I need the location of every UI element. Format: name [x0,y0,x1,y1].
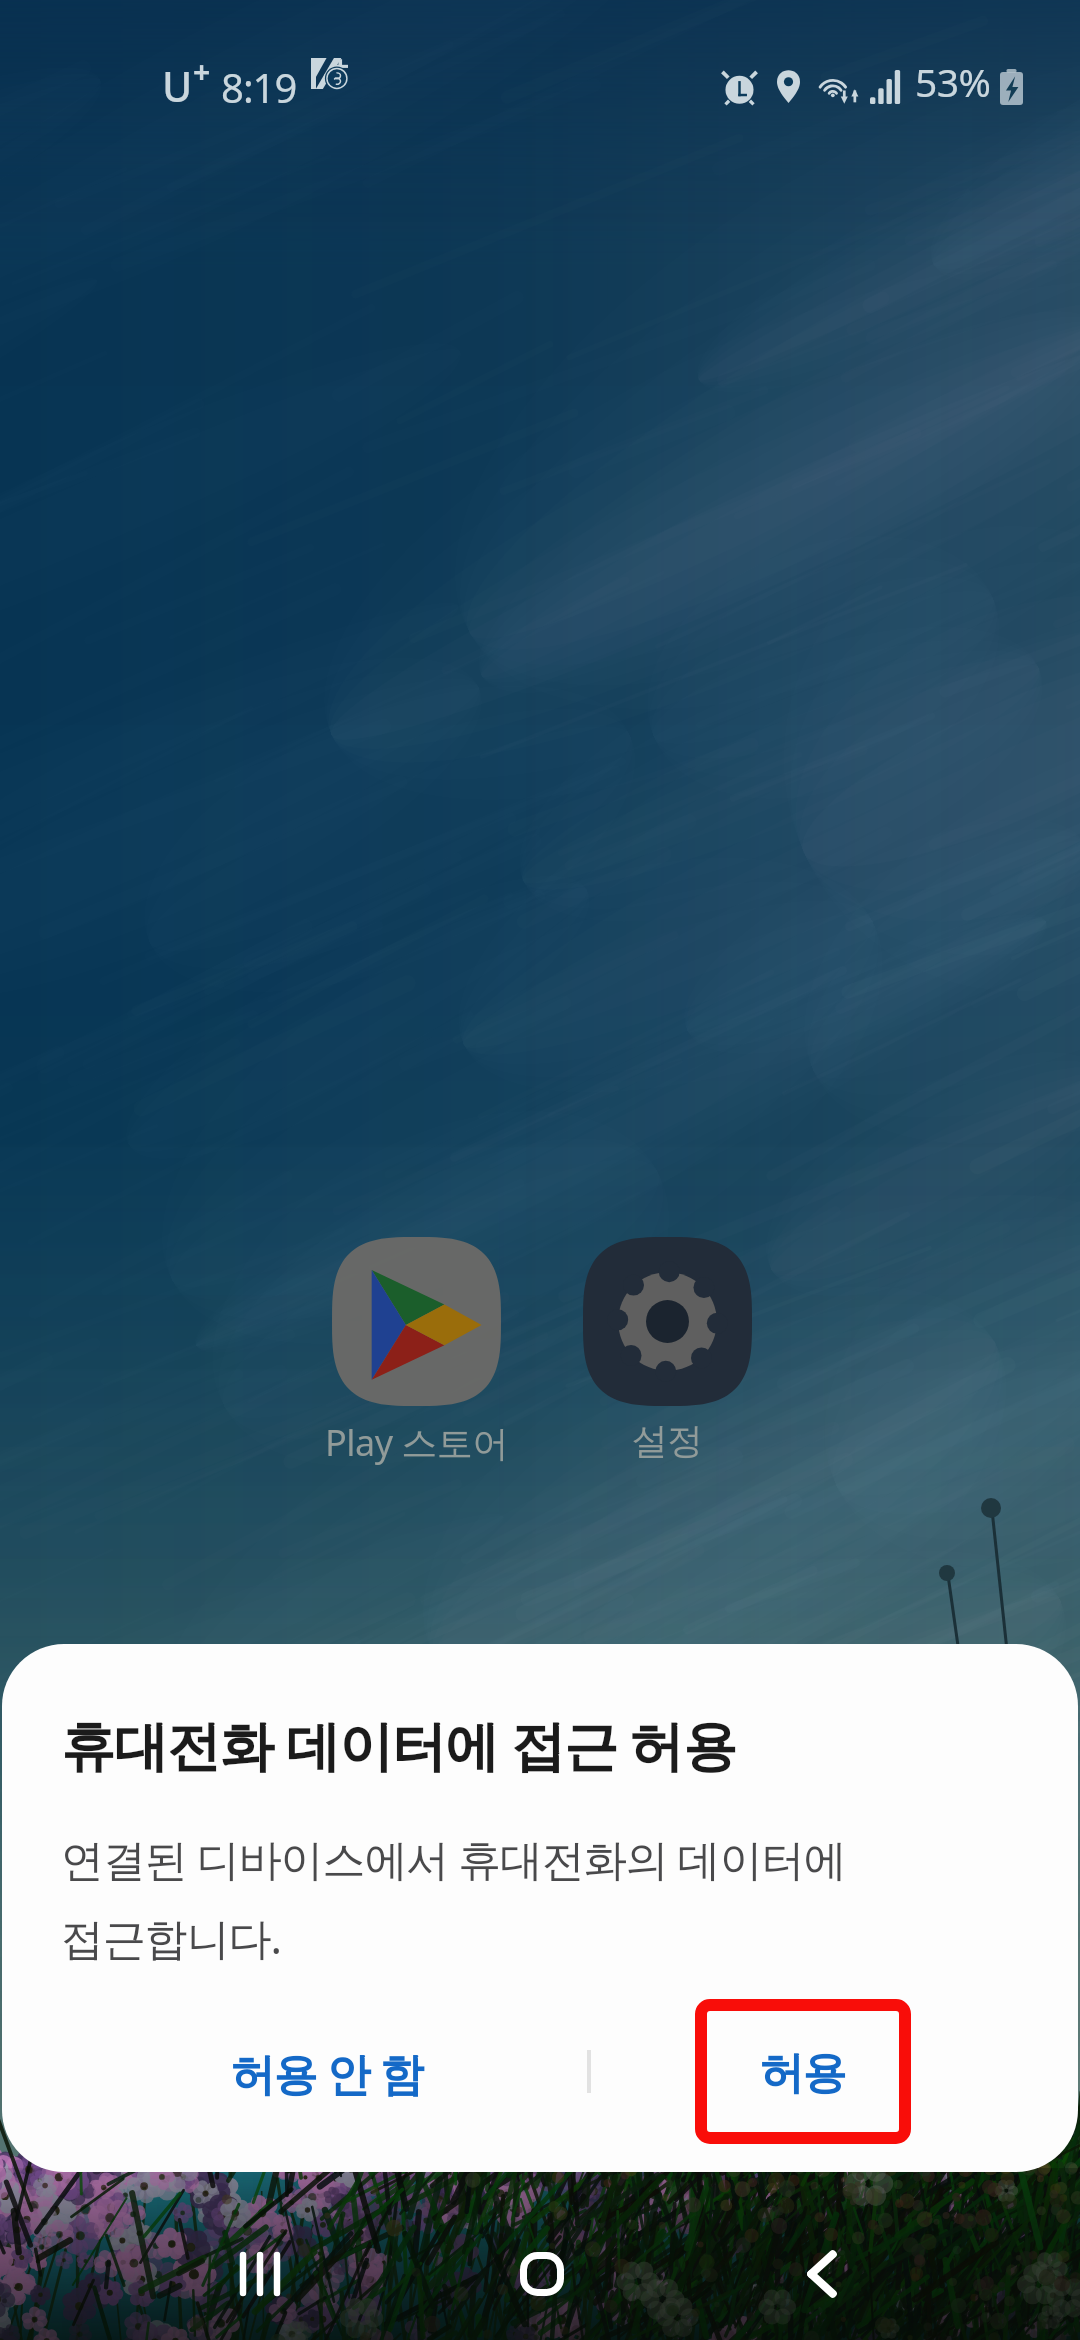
button[interactable]: Back [742,2194,902,2340]
staticText: 휴대전화 데이터에 접근 허용 [61,1707,737,1781]
staticText: 53% [915,55,991,108]
button[interactable]: 허용 [638,2015,968,2131]
button[interactable]: Play 스토어 [266,1237,566,1467]
staticText: U [162,58,193,114]
staticText: 설정 [632,1418,703,1463]
staticText: 허용 안 함 [231,2043,423,2103]
staticText: + [193,51,211,92]
staticText: 연결된 디바이스에서 휴대전화의 데이터에 접근합니다. [61,1829,846,1966]
button[interactable]: Recent apps [181,2194,341,2340]
button[interactable]: Home [462,2194,622,2340]
button[interactable]: 허용 안 함 [162,2015,492,2131]
staticText: Play 스토어 [325,1418,508,1467]
staticText: 허용 [760,2046,846,2101]
button[interactable]: 설정 [517,1237,817,1463]
staticText: 8:19 [221,60,297,114]
